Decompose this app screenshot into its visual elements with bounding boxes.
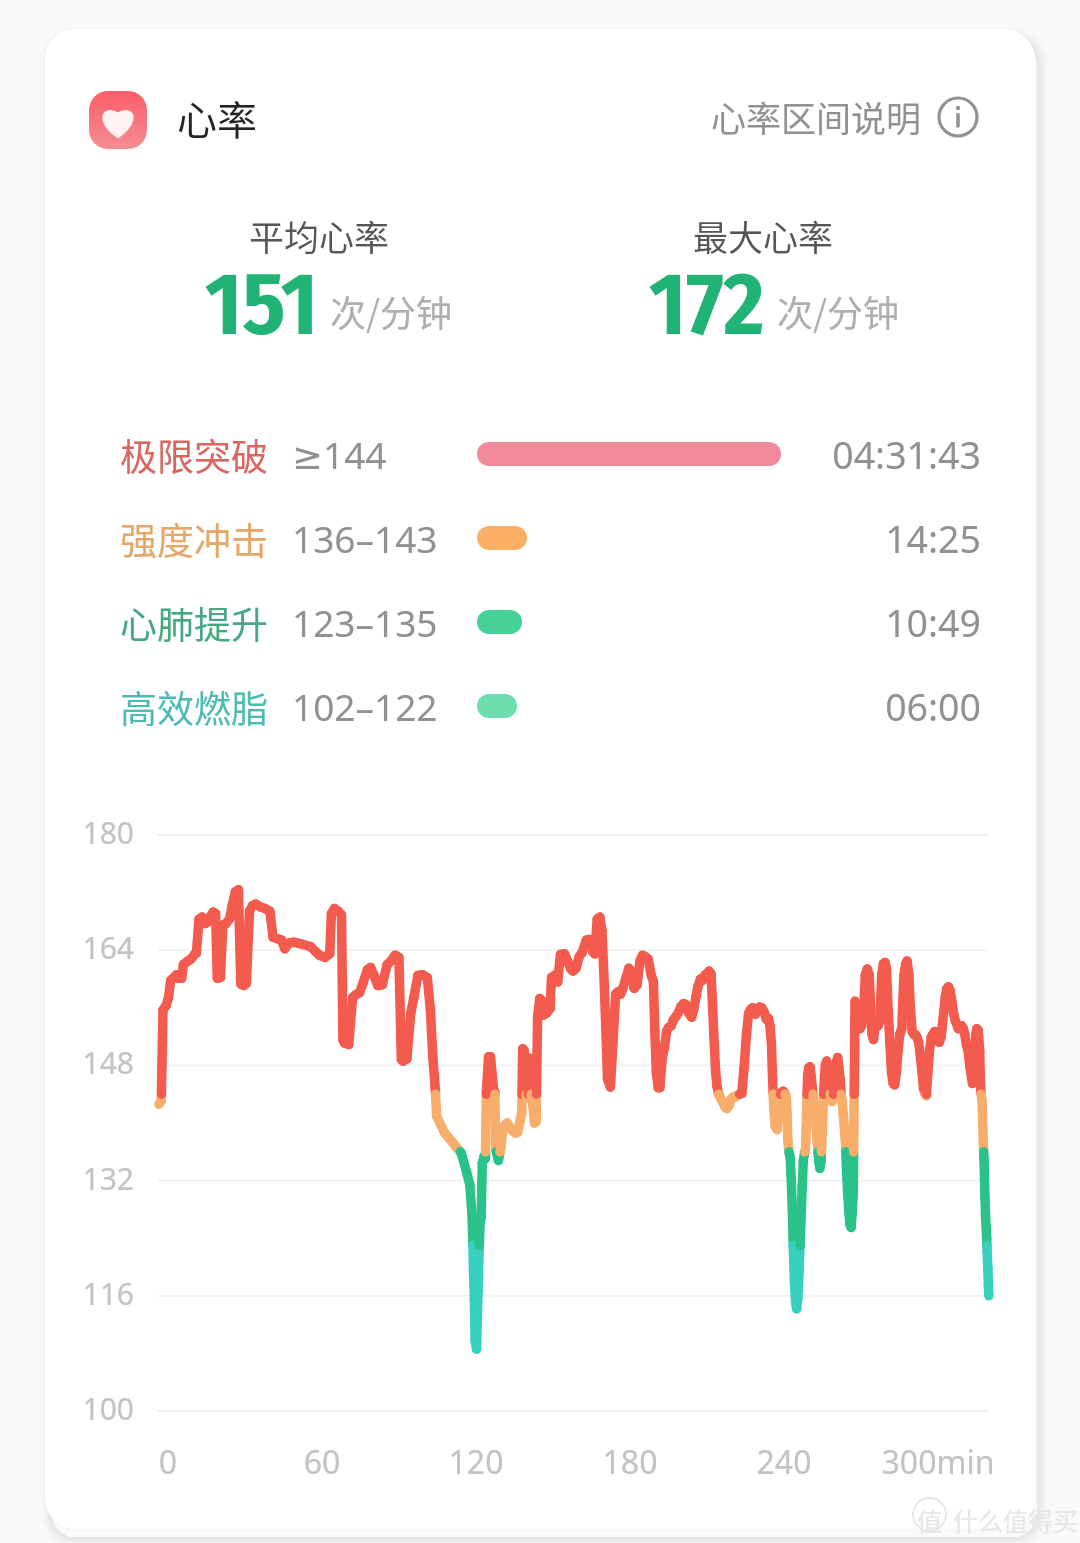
- staticText: 高效燃脂: [120, 680, 268, 734]
- staticText: 心肺提升: [120, 596, 268, 650]
- staticText: 100: [45, 1388, 134, 1429]
- button[interactable]: 心肺提升: [45, 575, 1035, 659]
- staticText: 172: [649, 252, 765, 358]
- staticText: 120: [386, 1440, 566, 1484]
- staticText: 136–143: [292, 513, 438, 563]
- staticText: 最大心率: [613, 210, 913, 261]
- staticText: 300min: [848, 1440, 1028, 1484]
- staticText: 132: [45, 1158, 134, 1199]
- button[interactable]: 高效燃脂: [45, 659, 1035, 743]
- staticText: 180: [45, 812, 134, 853]
- button[interactable]: 极限突破: [45, 407, 1035, 491]
- staticText: 148: [45, 1042, 134, 1083]
- staticText: 04:31:43: [681, 429, 981, 480]
- button[interactable]: 强度冲击: [45, 491, 1035, 575]
- staticText: 次/分钟: [777, 285, 900, 337]
- staticText: 10:49: [681, 597, 981, 648]
- staticText: ≥144: [292, 429, 387, 479]
- staticText: 什么值得买: [953, 1502, 1079, 1538]
- staticText: 极限突破: [120, 428, 268, 482]
- staticText: 164: [45, 927, 134, 968]
- staticText: 心率: [177, 89, 257, 147]
- staticText: 240: [694, 1440, 874, 1484]
- staticText: 次/分钟: [330, 285, 453, 337]
- staticText: 值: [917, 1502, 943, 1538]
- staticText: 06:00: [681, 681, 981, 732]
- staticText: 180: [540, 1440, 720, 1484]
- staticText: 123–135: [292, 597, 438, 647]
- staticText: 151: [205, 252, 318, 358]
- other: Heart rate zone info: [936, 95, 980, 139]
- staticText: 心率区间说明: [711, 91, 922, 142]
- staticText: 102–122: [292, 681, 438, 731]
- staticText: 14:25: [681, 513, 981, 564]
- button[interactable]: 心率区间说明: [711, 91, 980, 142]
- staticText: 强度冲击: [120, 512, 268, 566]
- staticText: 0: [78, 1440, 258, 1484]
- staticText: 平均心率: [169, 210, 469, 261]
- staticText: 60: [232, 1440, 412, 1484]
- staticText: 116: [45, 1273, 134, 1314]
